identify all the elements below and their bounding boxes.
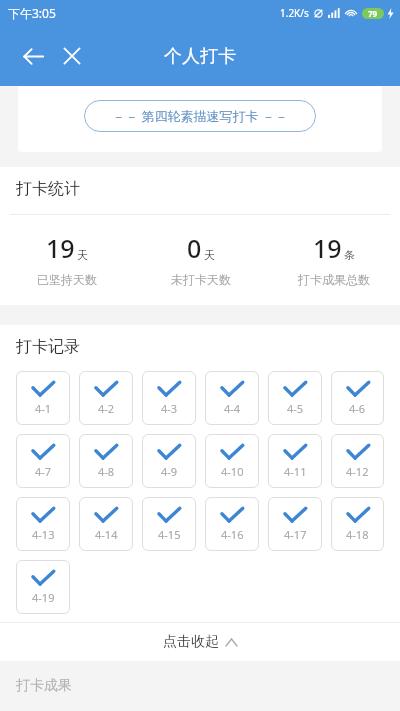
staticText: 4-17 [284, 527, 307, 542]
staticText: 4-8 [98, 464, 115, 479]
staticText: 4-4 [224, 401, 241, 416]
staticText: 4-11 [284, 464, 307, 479]
button[interactable]: 4-12 [331, 434, 384, 488]
staticText: 4-15 [158, 527, 181, 542]
staticText: 打卡成果 [16, 677, 72, 695]
button[interactable]: 4-5 [268, 371, 322, 425]
button[interactable]: －－ 第四轮素描速写打卡 －－ [84, 100, 316, 132]
staticText: 打卡成果总数 [298, 272, 370, 287]
button[interactable]: 4-17 [268, 497, 322, 551]
button[interactable]: 4-19 [16, 560, 70, 614]
staticText: 1.2K/s [280, 6, 309, 20]
staticText: 19 [313, 231, 342, 265]
staticText: 4-2 [98, 401, 115, 416]
staticText: 79 [368, 8, 378, 19]
button[interactable]: 19 [267, 231, 400, 287]
staticText: 打卡记录 [16, 337, 80, 357]
staticText: 4-19 [32, 590, 55, 605]
button[interactable]: 4-1 [16, 371, 70, 425]
staticText: 4-13 [32, 527, 55, 542]
staticText: 个人打卡 [164, 45, 236, 68]
button[interactable]: Close [52, 36, 92, 76]
staticText: 0 [187, 231, 202, 265]
staticText: 4-18 [346, 527, 369, 542]
button[interactable]: 19 [0, 231, 134, 287]
staticText: 4-9 [161, 464, 178, 479]
staticText: 点击收起 [163, 633, 219, 651]
staticText: 未打卡天数 [171, 272, 231, 287]
button[interactable]: 4-15 [142, 497, 196, 551]
button[interactable]: 4-3 [142, 371, 196, 425]
staticText: 4-7 [35, 464, 52, 479]
button[interactable]: 4-18 [331, 497, 384, 551]
staticText: 19 [46, 231, 75, 265]
staticText: 4-1 [35, 401, 52, 416]
button[interactable]: 4-6 [331, 371, 384, 425]
button[interactable]: 点击收起 [0, 623, 400, 661]
staticText: 4-3 [161, 401, 178, 416]
button[interactable]: 0 [134, 231, 267, 287]
staticText: 4-16 [221, 527, 244, 542]
button[interactable]: 4-9 [142, 434, 196, 488]
button[interactable]: 4-13 [16, 497, 70, 551]
button[interactable]: Back [12, 35, 54, 77]
staticText: 4-10 [221, 464, 244, 479]
button[interactable]: 4-2 [79, 371, 133, 425]
button[interactable]: 4-10 [205, 434, 259, 488]
button[interactable]: 4-8 [79, 434, 133, 488]
staticText: 打卡统计 [16, 179, 80, 199]
button[interactable]: 4-4 [205, 371, 259, 425]
staticText: －－ 第四轮素描速写打卡 －－ [112, 107, 288, 125]
staticText: 4-6 [349, 401, 366, 416]
staticText: 天 [77, 248, 88, 262]
staticText: 4-14 [95, 527, 118, 542]
staticText: 4-12 [346, 464, 369, 479]
staticText: 4-5 [287, 401, 304, 416]
staticText: 天 [204, 248, 215, 262]
button[interactable]: 4-11 [268, 434, 322, 488]
staticText: 已坚持天数 [37, 272, 97, 287]
staticText: 下午3:05 [8, 5, 56, 21]
staticText: 条 [344, 248, 355, 262]
button[interactable]: 4-7 [16, 434, 70, 488]
button[interactable]: 4-16 [205, 497, 259, 551]
button[interactable]: 4-14 [79, 497, 133, 551]
